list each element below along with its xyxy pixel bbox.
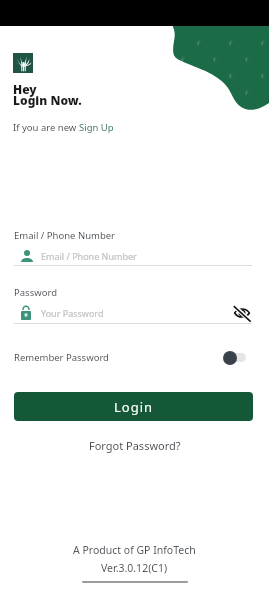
button[interactable]: Sign Up	[79, 121, 114, 134]
staticText: Login Now.	[13, 92, 82, 108]
staticText: Email / Phone Number	[41, 250, 137, 262]
staticText: Password	[14, 286, 57, 299]
staticText: Remember Password	[14, 351, 109, 364]
button[interactable]: Show password	[233, 304, 251, 322]
staticText: A Product of GP InfoTech	[73, 543, 196, 557]
staticText: Hey	[13, 81, 37, 97]
staticText: Login	[114, 398, 154, 416]
staticText: Ver.3.0.12(C1)	[101, 561, 168, 575]
staticText: Your Password	[41, 307, 104, 319]
staticText: Email / Phone Number	[14, 229, 116, 242]
staticText: If you are new	[13, 121, 79, 134]
button[interactable]: Forgot Password?	[89, 438, 181, 453]
button[interactable]: Remember password toggle	[223, 350, 246, 365]
button[interactable]: Login	[14, 392, 253, 421]
